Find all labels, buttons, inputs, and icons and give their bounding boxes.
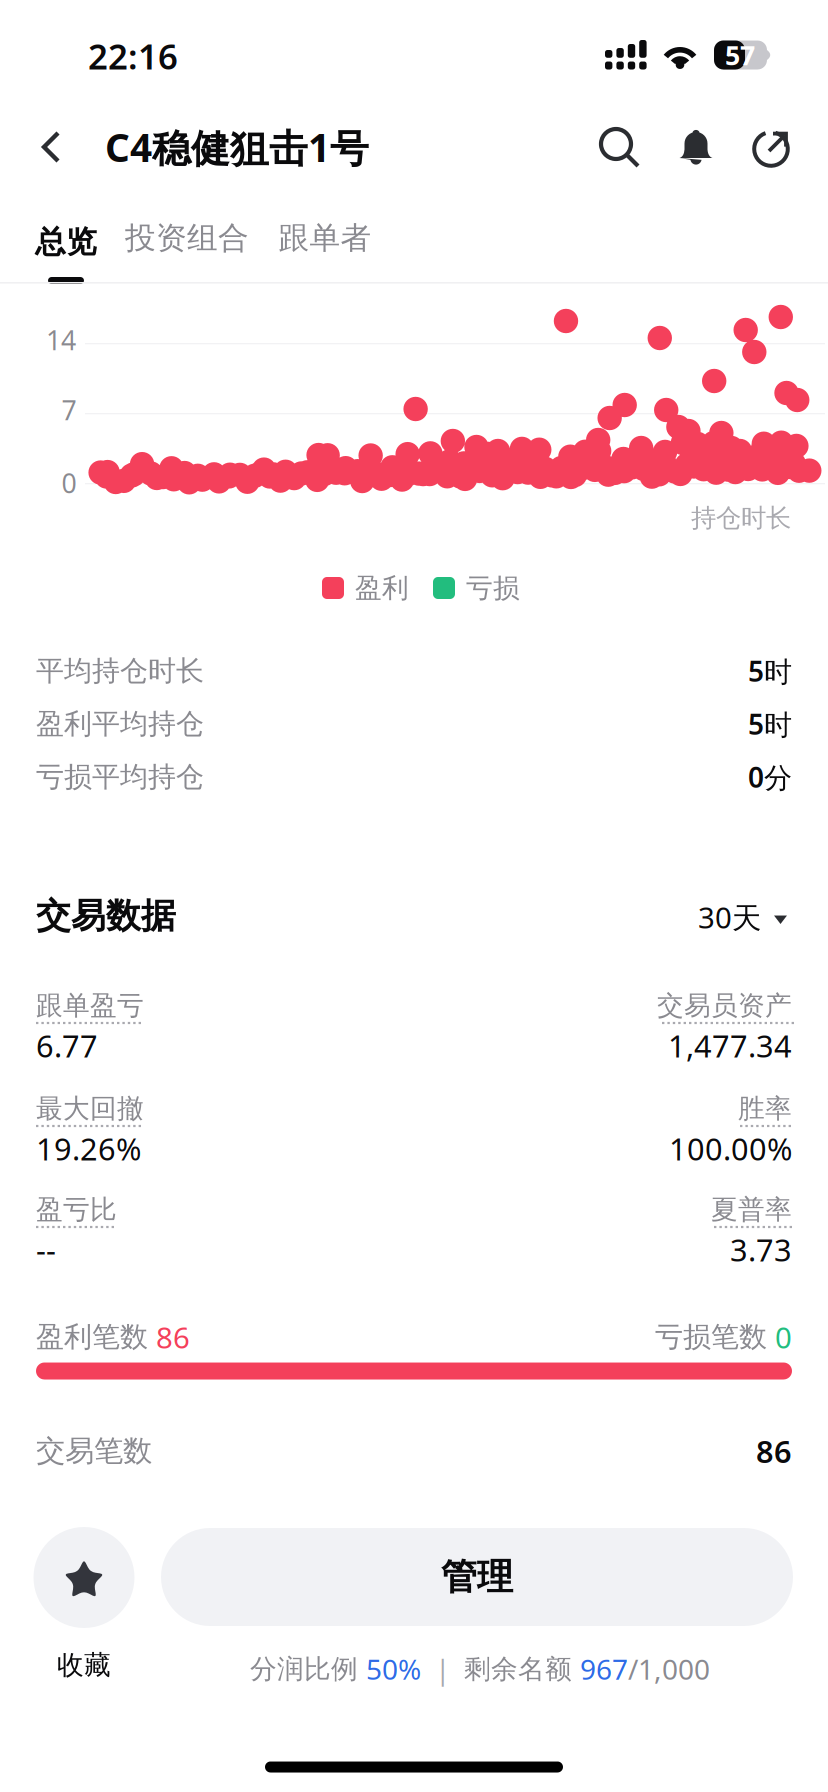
staticText: 交易员资产 <box>657 989 792 1022</box>
staticText: 持仓时长 <box>691 502 791 533</box>
staticText: 亏损 <box>466 572 520 604</box>
button[interactable]: 跟单者 <box>273 208 377 268</box>
staticText: /1,000 <box>628 1650 710 1688</box>
staticText: 6.77 <box>36 1025 98 1066</box>
staticText: -- <box>36 1229 56 1270</box>
button[interactable]: 30天 <box>647 891 787 943</box>
staticText: 86 <box>148 1317 190 1356</box>
staticText: 交易笔数 <box>36 1433 152 1469</box>
staticText: 盈亏比 <box>36 1193 117 1226</box>
staticText: 50% <box>366 1650 421 1688</box>
button[interactable]: 收藏 <box>18 1527 150 1681</box>
staticText: 19.26% <box>36 1128 141 1169</box>
staticText: 盈利 <box>355 572 409 604</box>
staticText: 967 <box>580 1650 628 1688</box>
staticText: 57 <box>725 37 755 73</box>
staticText: 0分 <box>748 758 792 796</box>
staticText: 亏损笔数 <box>655 1320 767 1354</box>
staticText: C4稳健狙击1号 <box>105 121 369 173</box>
staticText: 5时 <box>748 652 792 690</box>
staticText: 收藏 <box>57 1649 111 1681</box>
staticText: 14 <box>46 322 76 358</box>
button[interactable]: Back <box>20 114 82 180</box>
button[interactable]: 管理 <box>161 1528 793 1626</box>
staticText: 100.00% <box>669 1128 792 1169</box>
staticText: 盈利笔数 <box>36 1320 148 1354</box>
staticText: 亏损平均持仓 <box>36 760 204 794</box>
staticText: 5时 <box>748 705 792 743</box>
staticText: 0 <box>767 1317 792 1356</box>
staticText: 分润比例 <box>250 1653 366 1685</box>
button[interactable]: 总览 <box>29 216 103 288</box>
button[interactable]: Notifications <box>663 115 729 181</box>
staticText: 总览 <box>35 223 97 261</box>
staticText: 1,477.34 <box>668 1025 792 1066</box>
staticText: 胜率 <box>738 1092 792 1125</box>
staticText: 盈利平均持仓 <box>36 707 204 741</box>
staticText: 22:16 <box>88 33 178 79</box>
staticText: 交易数据 <box>36 895 176 937</box>
staticText: 跟单者 <box>278 219 371 257</box>
staticText: 夏普率 <box>711 1193 792 1226</box>
staticText: 3.73 <box>730 1229 792 1270</box>
button[interactable]: Share <box>739 115 805 181</box>
staticText: 最大回撤 <box>36 1092 144 1125</box>
staticText: 跟单盈亏 <box>36 989 144 1022</box>
staticText: 30天 <box>698 897 761 936</box>
staticText: 86 <box>756 1431 792 1471</box>
staticText: 平均持仓时长 <box>36 654 204 688</box>
staticText: 剩余名额 <box>464 1653 580 1685</box>
button[interactable]: Search <box>587 115 653 181</box>
staticText: 7 <box>61 392 76 428</box>
button[interactable]: 投资组合 <box>120 208 254 268</box>
staticText: | <box>421 1650 464 1688</box>
staticText: 投资组合 <box>125 219 249 257</box>
staticText: 管理 <box>441 1555 513 1599</box>
staticText: 0 <box>61 465 76 501</box>
